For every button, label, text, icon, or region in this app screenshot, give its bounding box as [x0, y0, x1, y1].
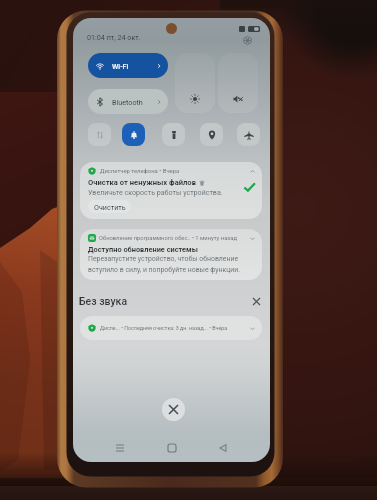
button[interactable]: Data transfer: [88, 123, 111, 146]
button[interactable]: Back: [212, 437, 234, 459]
button[interactable]: Brightness: [175, 53, 215, 113]
button[interactable]: Обновление программного обес.. • 1 минут…: [80, 229, 262, 280]
button[interactable]: Silent mode: [122, 123, 145, 146]
button[interactable]: Wi-Fi: [88, 53, 168, 78]
button[interactable]: Mute: [218, 53, 258, 113]
staticText: Увеличьте скорость работы устройства.: [88, 188, 223, 196]
staticText: Обновление программного обес.. • 1 минут…: [99, 235, 237, 242]
staticText: Перезапустите устройство, чтобы обновлен…: [88, 255, 241, 274]
staticText: Диспе... • Последняя очистка: 3 дн. наза…: [100, 325, 228, 331]
staticText: Очистить: [94, 203, 126, 211]
staticText: Wi-Fi: [112, 62, 129, 70]
button[interactable]: Recents: [109, 437, 131, 459]
staticText: Bluetooth: [112, 98, 143, 106]
button[interactable]: Close: [162, 398, 185, 421]
button[interactable]: Location: [200, 123, 223, 146]
button[interactable]: Airplane mode: [237, 123, 260, 146]
button[interactable]: Bluetooth: [88, 89, 168, 114]
button[interactable]: Очистить: [88, 200, 131, 213]
staticText: Без звука: [79, 295, 128, 307]
staticText: Диспетчер телефона • Вчера: [100, 168, 180, 175]
button[interactable]: Home: [161, 437, 183, 459]
staticText: Доступно обновление системы: [88, 245, 198, 254]
button[interactable]: Settings: [239, 32, 256, 49]
button[interactable]: Clear all: [249, 294, 263, 308]
staticText: Очистка от ненужных файлов: [88, 178, 196, 187]
button[interactable]: Диспетчер телефона • Вчера: [80, 162, 262, 219]
staticText: 01:04 пт, 24 окт.: [87, 33, 141, 41]
button[interactable]: Диспе... • Последняя очистка: 3 дн. наза…: [80, 316, 262, 340]
button[interactable]: Flashlight: [162, 123, 185, 146]
